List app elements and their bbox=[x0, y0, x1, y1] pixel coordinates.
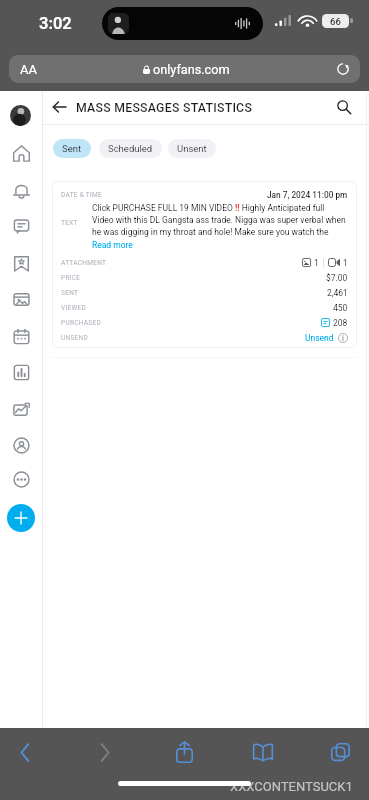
staticText: Unsent bbox=[177, 143, 207, 154]
button[interactable]: Search bbox=[331, 94, 357, 120]
button[interactable]: Sent bbox=[53, 139, 91, 158]
staticText: 1 bbox=[343, 258, 348, 268]
staticText: Read more bbox=[92, 240, 133, 250]
button[interactable]: Tabs bbox=[318, 730, 362, 774]
button[interactable]: Queue bbox=[3, 321, 39, 351]
button[interactable]: My profile bbox=[3, 430, 39, 460]
button[interactable]: Unsend bbox=[305, 333, 334, 343]
staticText: 66 bbox=[330, 16, 341, 27]
staticText: VIEWED bbox=[61, 304, 87, 312]
staticText: $7.00 bbox=[326, 273, 348, 283]
staticText: PRICE bbox=[61, 274, 81, 282]
button[interactable]: Home bbox=[3, 138, 39, 168]
other: Info bbox=[338, 333, 348, 343]
staticText: onlyfans.com bbox=[153, 62, 230, 77]
staticText: MASS MESSAGES STATISTICS bbox=[76, 101, 253, 115]
staticText: XXXCONTENTSUCK1 bbox=[230, 779, 353, 794]
staticText: SENT bbox=[61, 289, 79, 297]
staticText: 1 bbox=[314, 258, 319, 268]
button[interactable]: AA bbox=[9, 55, 360, 83]
button[interactable]: Share bbox=[162, 730, 206, 774]
staticText: UNSEND bbox=[61, 334, 89, 342]
button[interactable]: Unsent bbox=[168, 139, 216, 158]
button[interactable]: Scheduled bbox=[99, 139, 162, 158]
button[interactable]: Back bbox=[46, 94, 72, 120]
other: Reload bbox=[336, 62, 350, 76]
button[interactable]: Statements bbox=[3, 394, 39, 424]
staticText: Jan 7, 2024 11:00 pm bbox=[267, 190, 348, 200]
staticText: DATE & TIME bbox=[61, 191, 103, 199]
staticText: 450 bbox=[333, 303, 348, 313]
staticText: 208 bbox=[333, 318, 348, 328]
staticText: Sent bbox=[62, 143, 82, 154]
button[interactable]: Forward bbox=[83, 730, 127, 774]
button[interactable]: Bookmarks bbox=[241, 730, 285, 774]
staticText: Unsend bbox=[305, 333, 334, 343]
staticText: AA bbox=[20, 62, 37, 77]
staticText: PURCHASED bbox=[61, 319, 102, 327]
button[interactable]: Statistics bbox=[3, 357, 39, 387]
button[interactable]: Messages bbox=[3, 211, 39, 241]
staticText: Click PURCHASE FULL 19 MIN VIDEO !! High… bbox=[92, 203, 347, 237]
button[interactable]: Collections bbox=[3, 248, 39, 278]
staticText: 2,461 bbox=[327, 288, 348, 298]
button[interactable]: Read more bbox=[92, 240, 133, 250]
button[interactable]: Your profile bbox=[10, 105, 31, 126]
button[interactable]: Back bbox=[3, 730, 47, 774]
button[interactable]: New post bbox=[7, 504, 35, 532]
staticText: TEXT bbox=[61, 219, 78, 227]
staticText: ATTACHMENT bbox=[61, 259, 107, 267]
staticText: Scheduled bbox=[108, 143, 153, 154]
button[interactable]: Vault bbox=[3, 284, 39, 314]
button[interactable]: More bbox=[3, 464, 39, 494]
staticText: 3:02 bbox=[39, 14, 72, 33]
button[interactable]: Notifications bbox=[3, 175, 39, 205]
